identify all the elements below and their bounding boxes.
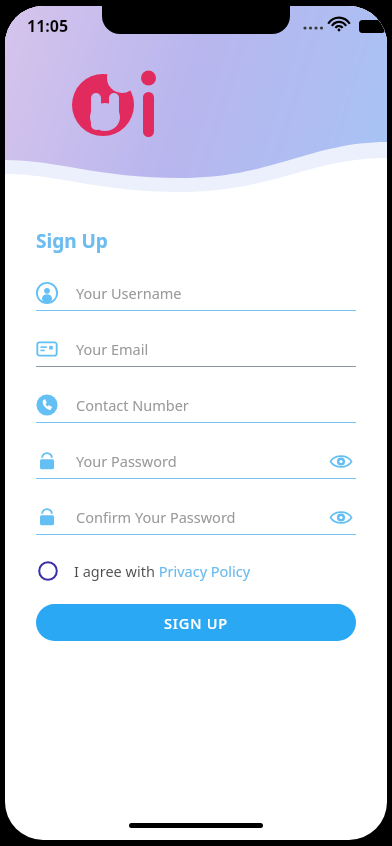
button[interactable]: SIGN UP — [36, 604, 356, 641]
staticText: Your Email — [76, 339, 356, 359]
staticText: I agree with Privacy Policy — [74, 561, 251, 581]
staticText: Your Password — [76, 451, 326, 471]
staticText: SIGN UP — [164, 613, 228, 633]
button[interactable]: Show password — [326, 502, 356, 532]
staticText: Sign Up — [36, 228, 108, 254]
staticText: Confirm Your Password — [76, 507, 326, 527]
button[interactable]: I agree with Privacy Policy — [36, 552, 356, 590]
staticText: Contact Number — [76, 395, 356, 415]
staticText: 11:05 — [27, 15, 69, 37]
button[interactable]: Show password — [326, 446, 356, 476]
staticText: Your Username — [76, 283, 356, 303]
